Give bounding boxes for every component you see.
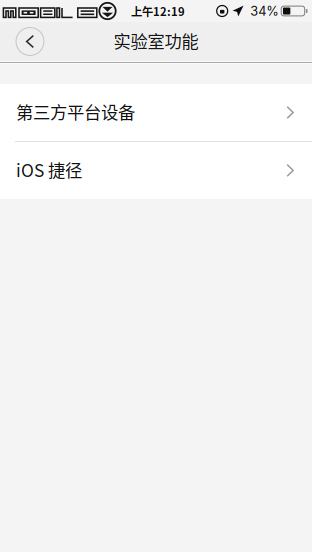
staticText: 实验室功能 — [113, 28, 198, 53]
button[interactable]: 第三方平台设备 — [0, 84, 312, 141]
button[interactable]: Back — [15, 26, 45, 56]
staticText: 上午12:19 — [131, 3, 185, 19]
staticText: iOS 捷径 — [16, 157, 82, 182]
staticText: 第三方平台设备 — [16, 99, 135, 124]
staticText: 34% — [250, 3, 279, 19]
button[interactable]: iOS 捷径 — [0, 142, 312, 199]
